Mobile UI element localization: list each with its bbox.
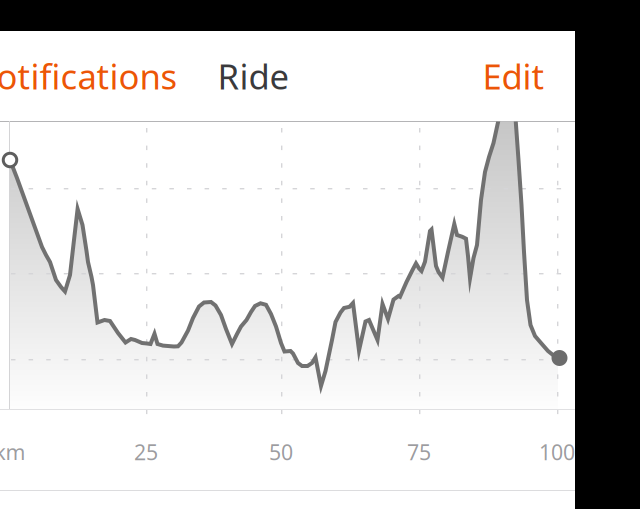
- staticText: km: [0, 438, 25, 466]
- button[interactable]: Edit: [482, 53, 544, 99]
- staticText: Notifications: [0, 53, 177, 99]
- staticText: 50: [269, 438, 293, 466]
- staticText: 100: [539, 438, 575, 466]
- staticText: Ride: [217, 53, 289, 99]
- staticText: 25: [134, 438, 158, 466]
- staticText: 75: [407, 438, 431, 466]
- staticText: Edit: [482, 53, 544, 99]
- button[interactable]: Notifications: [0, 53, 177, 99]
